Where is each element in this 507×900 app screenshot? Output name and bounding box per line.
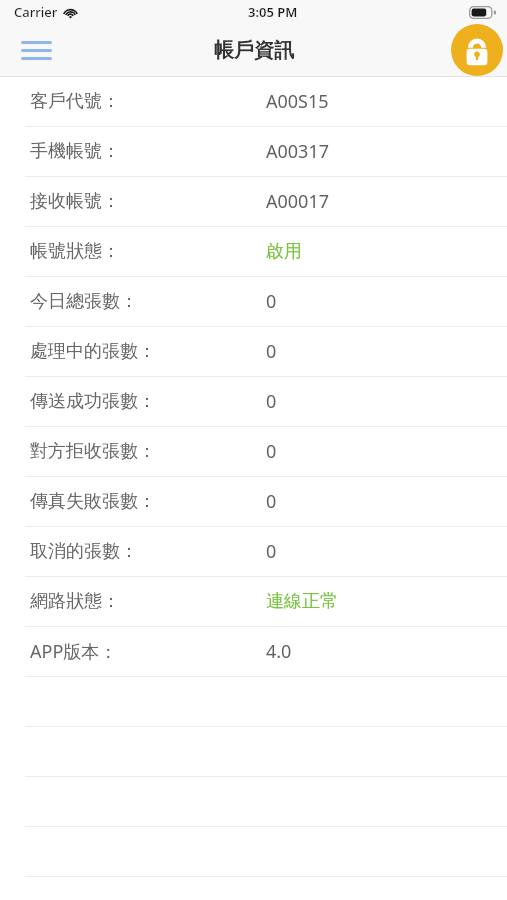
staticText: Carrier	[14, 3, 58, 21]
staticText: 啟用	[266, 240, 302, 263]
button[interactable]: 處理中的張數：	[0, 327, 507, 376]
staticText: 0	[266, 539, 277, 564]
staticText: 傳真失敗張數：	[30, 490, 156, 513]
button[interactable]: 傳真失敗張數：	[0, 477, 507, 526]
button[interactable]: 傳送成功張數：	[0, 377, 507, 426]
staticText: 取消的張數：	[30, 540, 138, 563]
staticText: A00S15	[266, 89, 329, 114]
staticText: 帳號狀態：	[30, 240, 120, 263]
staticText: 4.0	[266, 639, 292, 664]
staticText: 客戶代號：	[30, 90, 120, 113]
button[interactable]: 手機帳號：	[0, 127, 507, 176]
staticText: 0	[266, 289, 277, 314]
staticText: 接收帳號：	[30, 190, 120, 213]
button[interactable]: 網路狀態：	[0, 577, 507, 626]
staticText: 手機帳號：	[30, 140, 120, 163]
staticText: 網路狀態：	[30, 590, 120, 613]
staticText: 今日總張數：	[30, 290, 138, 313]
button[interactable]: 今日總張數：	[0, 277, 507, 326]
staticText: 0	[266, 489, 277, 514]
staticText: 0	[266, 439, 277, 464]
button[interactable]: 帳號狀態：	[0, 227, 507, 276]
button[interactable]: 取消的張數：	[0, 527, 507, 576]
button[interactable]: 對方拒收張數：	[0, 427, 507, 476]
staticText: 3:05 PM	[248, 3, 298, 21]
button[interactable]: 接收帳號：	[0, 177, 507, 226]
button[interactable]: Lock	[448, 24, 506, 76]
staticText: 0	[266, 339, 277, 364]
staticText: APP版本：	[30, 639, 118, 664]
staticText: 0	[266, 389, 277, 414]
staticText: 帳戶資訊	[214, 38, 294, 63]
staticText: 傳送成功張數：	[30, 390, 156, 413]
button[interactable]: Menu	[10, 27, 62, 73]
staticText: A00017	[266, 189, 329, 214]
button[interactable]: APP版本：	[0, 627, 507, 676]
staticText: 連線正常	[266, 590, 338, 613]
button[interactable]: 客戶代號：	[0, 77, 507, 126]
staticText: 處理中的張數：	[30, 340, 156, 363]
staticText: 對方拒收張數：	[30, 440, 156, 463]
staticText: A00317	[266, 139, 329, 164]
